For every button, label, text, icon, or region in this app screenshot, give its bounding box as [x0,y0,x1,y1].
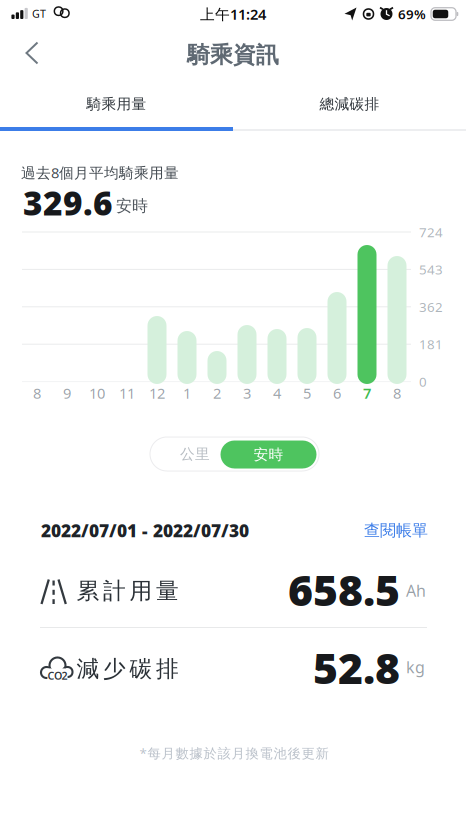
staticText: 總減碳排 [319,95,379,113]
staticText: 2022/07/01 - 2022/07/30 [41,519,249,542]
staticText: 累計用量 [76,577,179,605]
staticText: GT [32,6,46,21]
staticText: 724 [419,223,443,241]
button[interactable]: Back [9,30,53,74]
staticText: 過去8個月平均騎乘用量 [21,163,179,182]
staticText: 69% [398,5,426,23]
button[interactable]: 查閱帳單 [338,515,428,545]
staticText: *每月數據於該月換電池後更新 [139,744,328,762]
staticText: 52.8 [313,639,400,696]
staticText: 10 [89,383,105,403]
staticText: 8 [33,383,41,403]
button[interactable]: 總減碳排 [233,82,466,126]
staticText: 2 [213,383,221,403]
staticText: 減少碳排 [76,655,179,683]
staticText: 11 [119,383,135,403]
staticText: 1 [183,383,191,403]
staticText: 181 [419,335,443,353]
staticText: 查閱帳單 [364,521,428,540]
staticText: kg [406,656,425,678]
staticText: CO2 [47,668,68,683]
staticText: 騎乘資訊 [187,41,279,69]
staticText: 8 [393,383,401,403]
staticText: 362 [419,298,443,316]
staticText: 6 [333,383,341,403]
staticText: 658.5 [288,561,400,618]
staticText: 3 [243,383,251,403]
staticText: 上午11:24 [200,4,266,24]
staticText: 543 [419,260,443,278]
button[interactable]: 公里 [158,437,232,471]
staticText: 4 [273,383,281,403]
staticText: 安時 [116,196,148,216]
staticText: 公里 [180,445,210,463]
staticText: 騎乘用量 [86,95,146,113]
button[interactable]: 安時 [220,440,316,468]
staticText: 0 [419,373,427,390]
staticText: 安時 [253,445,283,463]
staticText: 7 [363,383,371,403]
staticText: 9 [63,383,71,403]
staticText: Ah [406,580,426,601]
staticText: 12 [149,383,165,403]
staticText: 329.6 [23,180,113,225]
staticText: 5 [303,383,311,403]
button[interactable]: 騎乘用量 [0,82,233,126]
